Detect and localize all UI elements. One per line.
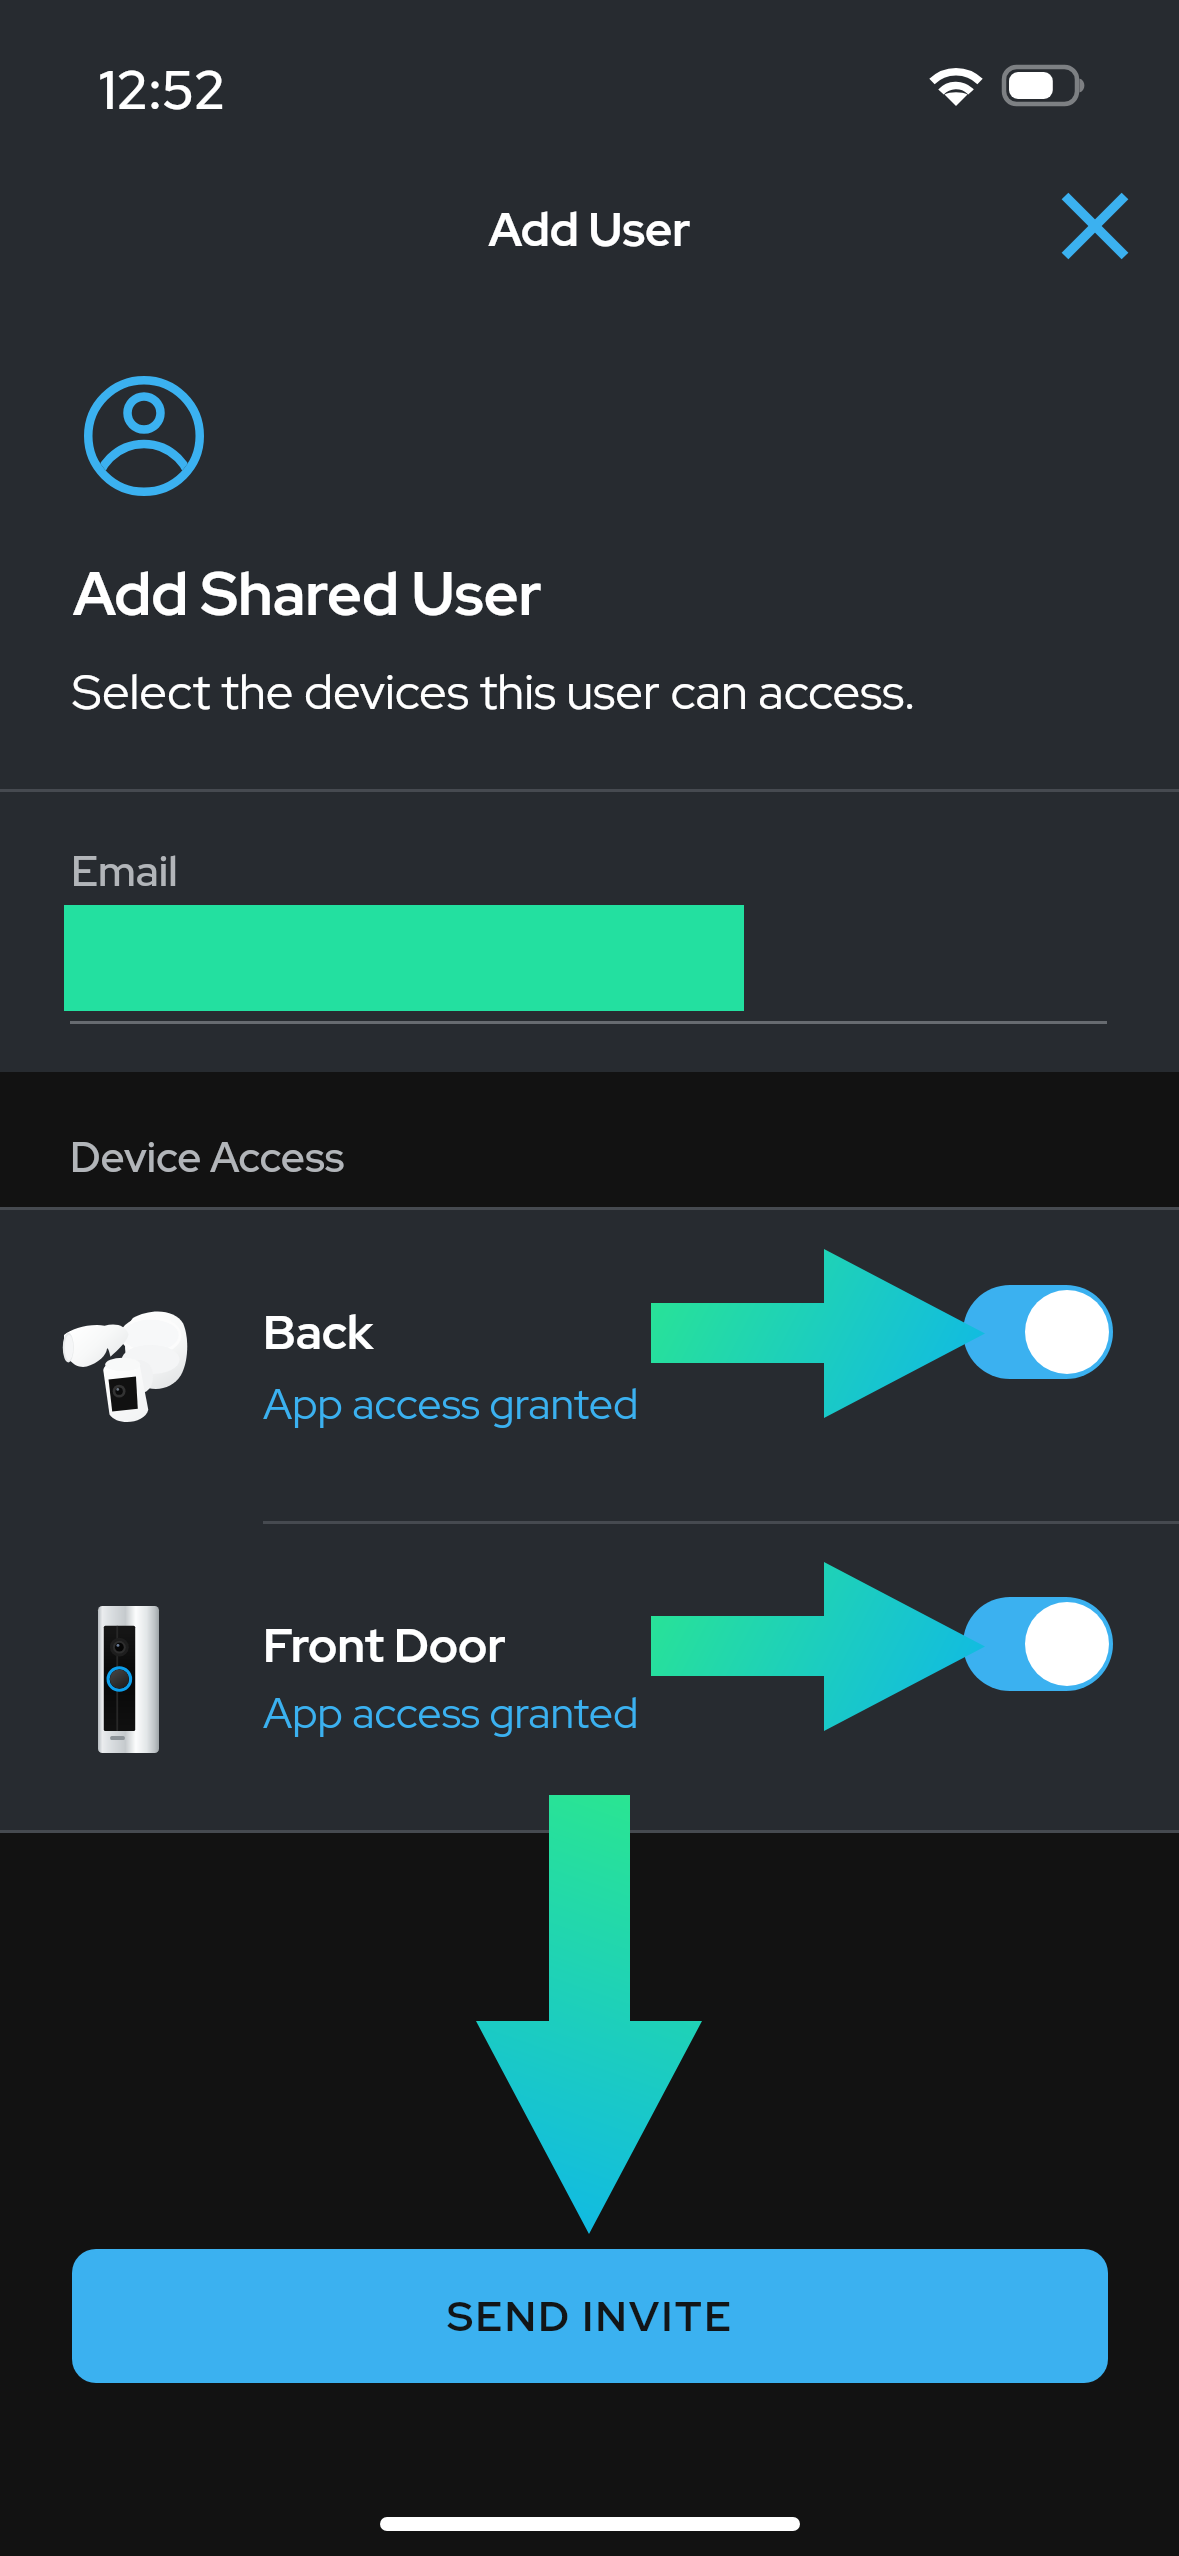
button[interactable]: Front Door [0, 1524, 1179, 1833]
staticText: Select the devices this user can access. [72, 659, 916, 724]
button[interactable]: Email address field [70, 902, 1107, 1024]
button[interactable]: Back [0, 1210, 1179, 1522]
button[interactable]: Toggle device access [963, 1597, 1113, 1691]
staticText: Email [71, 842, 178, 899]
button[interactable]: Toggle device access [963, 1285, 1113, 1379]
staticText: SEND INVITE [447, 2288, 734, 2344]
staticText: Add Shared User [73, 554, 542, 633]
button[interactable]: SEND INVITE [72, 2249, 1108, 2383]
staticText: Add User [0, 198, 1179, 260]
staticText: Back [263, 1300, 374, 1364]
staticText: Device Access [70, 1129, 345, 1185]
staticText: App access granted [263, 1375, 639, 1432]
button[interactable]: Close [1040, 171, 1150, 281]
staticText: App access granted [263, 1684, 639, 1741]
staticText: Front Door [263, 1613, 506, 1677]
staticText: 12:52 [99, 54, 226, 125]
